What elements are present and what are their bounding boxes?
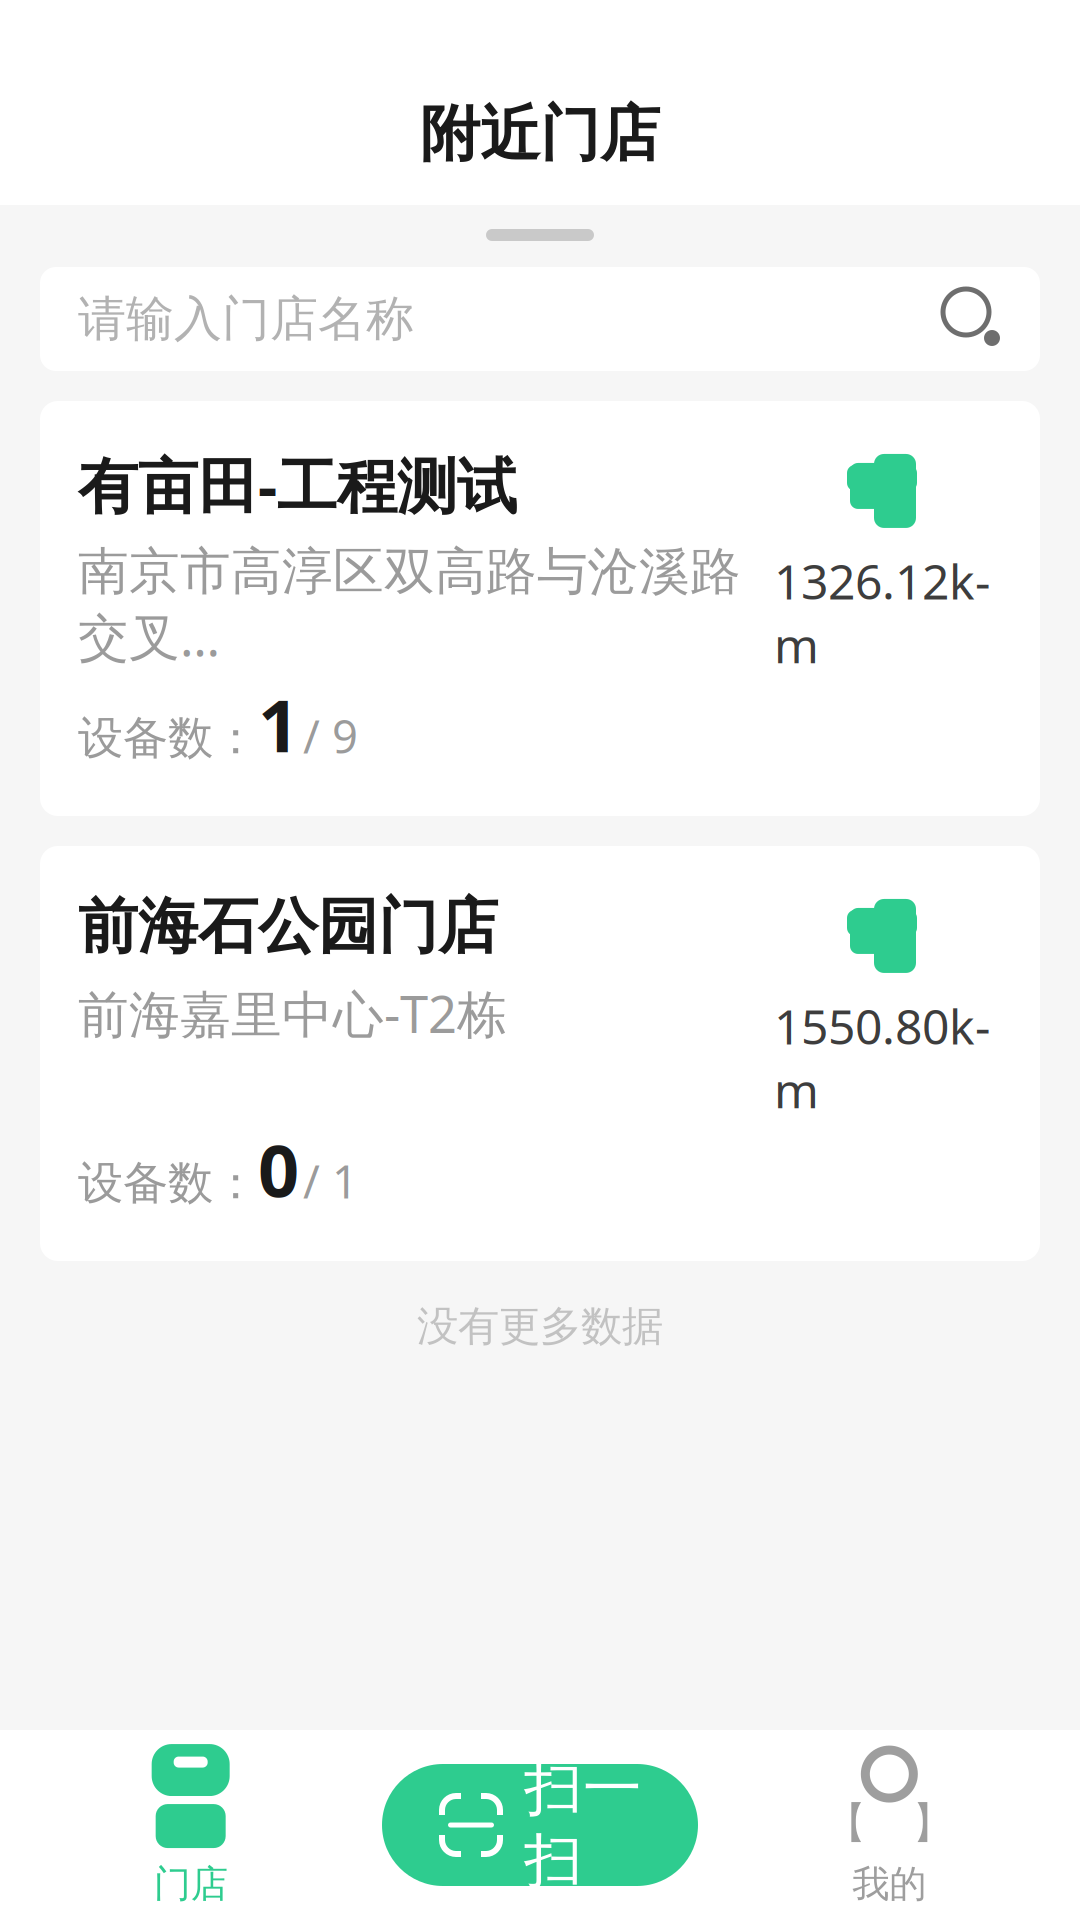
staticText: 1550.80km bbox=[774, 994, 990, 1121]
staticText: 门店 bbox=[154, 1861, 228, 1907]
staticText: 1 bbox=[258, 676, 299, 772]
button[interactable]: 前海石公园门店 bbox=[40, 846, 1040, 1261]
button[interactable]: 扫一扫 bbox=[382, 1764, 698, 1886]
button[interactable]: 有亩田-工程测试 bbox=[40, 401, 1040, 816]
staticText: 有亩田-工程测试 bbox=[78, 445, 517, 525]
button[interactable]: 请输入门店名称 bbox=[40, 267, 1040, 371]
staticText: / 9 bbox=[303, 706, 358, 766]
staticText: 我的 bbox=[852, 1861, 926, 1907]
button[interactable]: 我的 bbox=[715, 1731, 1064, 1919]
staticText: 前海石公园门店 bbox=[78, 890, 498, 964]
staticText: 扫一扫 bbox=[524, 1753, 642, 1897]
staticText: 设备数： bbox=[78, 1155, 258, 1211]
staticText: / 1 bbox=[303, 1151, 358, 1211]
staticText: 1326.12km bbox=[774, 549, 990, 676]
staticText: 附近门店 bbox=[420, 97, 660, 171]
staticText: 前海嘉里中心-T2栋 bbox=[78, 980, 508, 1047]
staticText: 0 bbox=[258, 1121, 299, 1217]
staticText: 没有更多数据 bbox=[417, 1301, 663, 1352]
staticText: 设备数： bbox=[78, 710, 258, 766]
staticText: 请输入门店名称 bbox=[78, 289, 414, 348]
staticText: 南京市高淳区双高路与沧溪路交叉… bbox=[78, 541, 741, 670]
button[interactable]: 门店 bbox=[16, 1731, 365, 1919]
